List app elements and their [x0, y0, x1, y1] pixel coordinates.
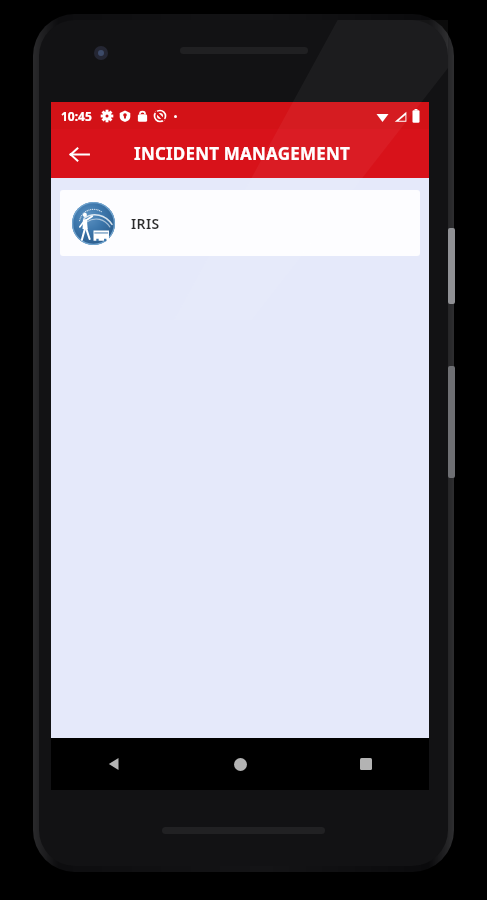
- staticText: INCIDENT MANAGEMENT: [134, 142, 350, 165]
- button[interactable]: Back: [59, 134, 99, 174]
- button[interactable]: Home: [177, 738, 303, 790]
- button[interactable]: Recent apps: [303, 738, 429, 790]
- button[interactable]: Back: [51, 738, 177, 790]
- button[interactable]: IRIS: [60, 190, 420, 256]
- staticText: 10:45: [61, 108, 92, 124]
- staticText: IRIS: [131, 214, 160, 233]
